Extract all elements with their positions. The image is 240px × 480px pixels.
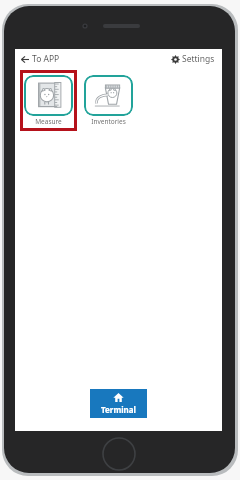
button[interactable]: To APP <box>19 51 62 67</box>
button[interactable]: Settings <box>169 51 217 67</box>
button[interactable]: Terminal <box>90 389 147 418</box>
staticText: Measure <box>35 117 62 126</box>
staticText: Settings <box>182 53 215 65</box>
staticText: Terminal <box>101 404 136 415</box>
other: Settings <box>171 55 180 64</box>
button[interactable]: Measure <box>24 75 73 126</box>
staticText: Inventories <box>91 117 126 126</box>
staticText: To APP <box>32 53 60 65</box>
button[interactable]: Inventories <box>84 75 133 126</box>
